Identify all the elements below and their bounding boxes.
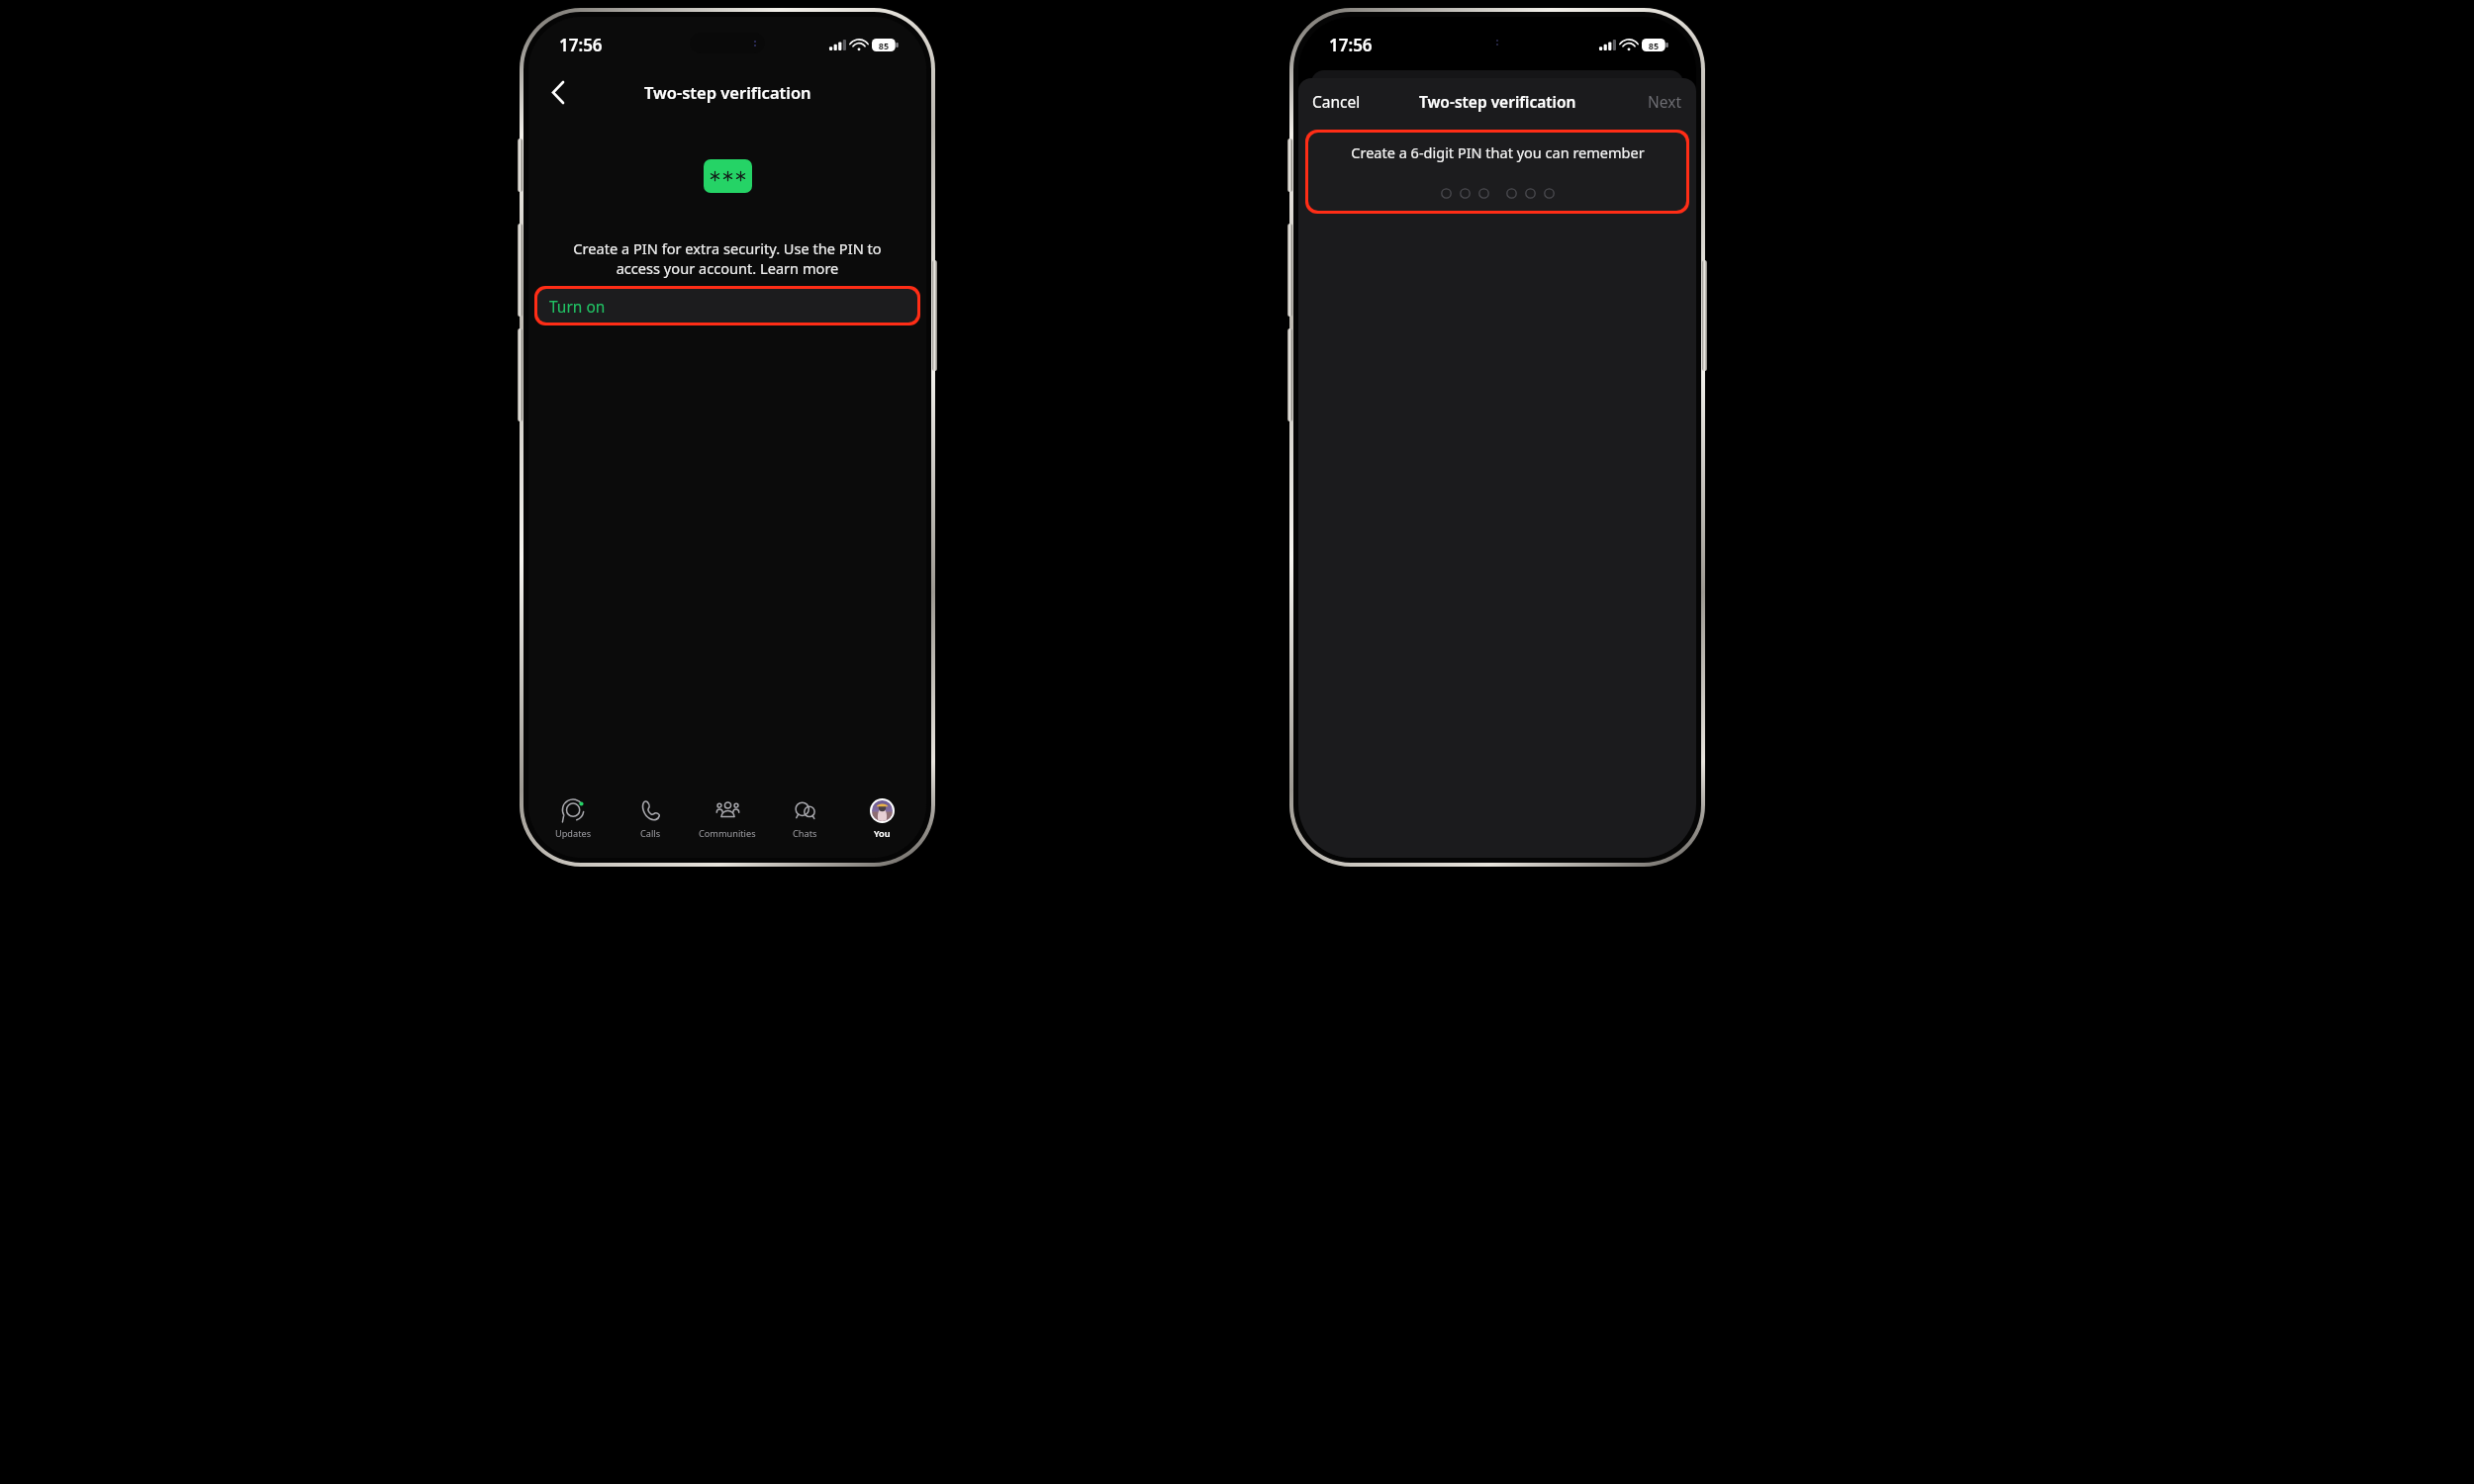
button[interactable]: Next	[1648, 91, 1682, 112]
staticText: 17:56	[1329, 34, 1373, 56]
button[interactable]: Communities	[689, 790, 766, 848]
staticText: Updates	[555, 827, 592, 840]
button[interactable]: Chats	[766, 790, 843, 848]
button[interactable]: You	[843, 790, 920, 848]
button[interactable]: Updates	[534, 790, 612, 848]
staticText: Two-step verification	[1419, 91, 1576, 112]
staticText: 17:56	[559, 34, 603, 56]
staticText: Create a PIN for extra security. Use the…	[562, 238, 893, 279]
staticText: 85	[872, 40, 896, 51]
button[interactable]: Create a 6-digit PIN that you can rememb…	[1308, 133, 1686, 211]
button[interactable]: Calls	[612, 790, 689, 848]
staticText: Calls	[640, 827, 661, 840]
staticText: Two-step verification	[644, 81, 811, 103]
button[interactable]: Back	[538, 72, 578, 112]
staticText: Chats	[793, 827, 817, 840]
staticText: 85	[1642, 40, 1665, 51]
button[interactable]: Cancel	[1312, 91, 1361, 112]
staticText: Cancel	[1312, 91, 1361, 112]
staticText: Create a 6-digit PIN that you can rememb…	[1351, 142, 1645, 162]
staticText: Turn on	[549, 296, 606, 317]
staticText: You	[874, 827, 891, 840]
button[interactable]: Turn on	[537, 289, 917, 323]
staticText: Communities	[699, 827, 756, 840]
staticText: Next	[1648, 91, 1682, 112]
